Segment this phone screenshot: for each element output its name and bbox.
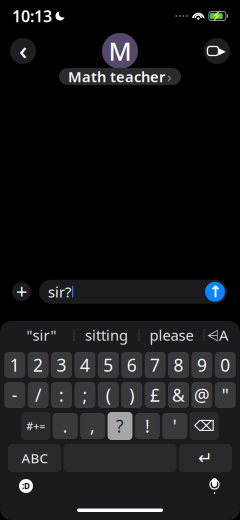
button[interactable]: Dictate <box>208 478 221 494</box>
button[interactable]: 6 <box>121 352 142 378</box>
button[interactable]: / <box>28 382 49 408</box>
staticText: #+= <box>26 419 45 433</box>
button[interactable]: sitting <box>74 322 138 348</box>
button[interactable]: Emoji <box>19 479 33 493</box>
button[interactable]: 0 <box>215 352 236 378</box>
staticText: please <box>149 325 193 345</box>
button[interactable]: 4 <box>74 352 95 378</box>
staticText: sir? <box>48 282 71 301</box>
button[interactable]: . <box>53 413 78 439</box>
staticText: ⩤A <box>207 325 228 345</box>
staticText: ' <box>173 414 177 437</box>
button[interactable]: Text formatting <box>204 322 230 348</box>
staticText: ‹ <box>19 33 27 67</box>
button[interactable]: Send <box>205 282 225 302</box>
button[interactable]: , <box>80 413 105 439</box>
staticText: 0 <box>220 353 230 376</box>
staticText: " <box>222 383 229 406</box>
staticText: 4 <box>80 353 90 376</box>
staticText: ABC <box>22 449 48 467</box>
staticText: , <box>90 414 95 437</box>
staticText: ↵ <box>198 448 213 468</box>
button[interactable]: 9 <box>191 352 212 378</box>
staticText: ; <box>82 383 87 406</box>
button[interactable]: Back <box>10 34 36 68</box>
staticText: 1 <box>10 353 20 376</box>
staticText: & <box>172 383 185 406</box>
button[interactable]: 1 <box>4 352 25 378</box>
staticText: 10:13 <box>12 5 52 27</box>
staticText <box>117 443 123 473</box>
button[interactable]: please <box>139 322 203 348</box>
staticText: - <box>12 383 18 406</box>
staticText: M <box>108 34 131 68</box>
button[interactable]: 8 <box>168 352 189 378</box>
staticText: ▶ <box>218 46 225 56</box>
staticText: ) <box>129 383 134 406</box>
staticText: "sir" <box>26 325 56 345</box>
button[interactable]: ) <box>121 382 142 408</box>
button[interactable]: Return <box>179 444 232 472</box>
button[interactable]: 3 <box>51 352 72 378</box>
button[interactable]: ! <box>135 413 160 439</box>
button[interactable]: : <box>51 382 72 408</box>
button[interactable]: Math teacher <box>59 68 181 85</box>
staticText: 7 <box>150 353 160 376</box>
button[interactable]: - <box>4 382 25 408</box>
button[interactable]: 5 <box>98 352 119 378</box>
button[interactable]: " <box>215 382 236 408</box>
staticText: ↑ <box>208 283 221 301</box>
staticText: sitting <box>85 325 128 345</box>
button[interactable]: ' <box>162 413 187 439</box>
button[interactable]: ABC <box>8 444 61 472</box>
staticText: + <box>16 277 27 304</box>
button[interactable]: Add attachment <box>12 278 31 305</box>
staticText: ? <box>116 414 124 437</box>
staticText: . <box>63 414 68 437</box>
staticText: / <box>35 383 41 406</box>
staticText: › <box>167 67 172 86</box>
button[interactable]: Delete <box>190 412 219 440</box>
button[interactable]: & <box>168 382 189 408</box>
button[interactable]: Video call <box>204 38 230 64</box>
staticText: 2 <box>33 353 43 376</box>
button[interactable]: 2 <box>28 352 49 378</box>
button[interactable]: "sir" <box>9 322 73 348</box>
button[interactable]: ? <box>107 412 132 440</box>
staticText: 8 <box>173 353 183 376</box>
staticText: ⚡ <box>211 11 223 21</box>
button[interactable]: £ <box>145 382 166 408</box>
button[interactable]: ( <box>98 382 119 408</box>
staticText: 3 <box>56 353 66 376</box>
staticText: Math teacher <box>68 67 165 86</box>
button[interactable]: #+= <box>21 412 50 440</box>
staticText: : <box>59 383 64 406</box>
button[interactable]: 7 <box>145 352 166 378</box>
staticText: :D <box>22 481 30 491</box>
button[interactable]: ; <box>74 382 95 408</box>
staticText: £ <box>150 383 160 406</box>
staticText: 9 <box>197 353 207 376</box>
staticText: 6 <box>127 353 137 376</box>
button[interactable]: @ <box>191 382 212 408</box>
staticText: ( <box>106 383 111 406</box>
staticText: 5 <box>103 353 113 376</box>
staticText: @ <box>194 383 210 406</box>
staticText: ⌫ <box>194 418 215 434</box>
staticText: ! <box>145 414 150 437</box>
